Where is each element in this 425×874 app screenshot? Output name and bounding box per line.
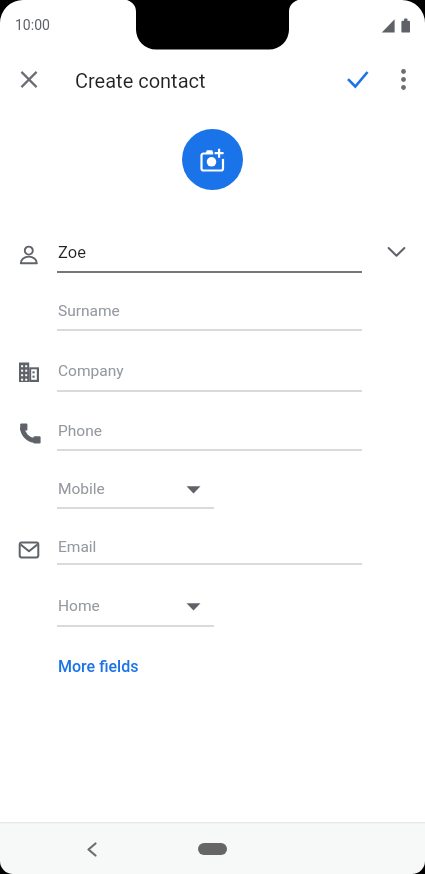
staticText: Zoe [58, 243, 86, 262]
button[interactable] [47, 411, 377, 451]
button[interactable] [50, 650, 160, 684]
button[interactable] [47, 527, 377, 567]
staticText: More fields [58, 657, 139, 676]
staticText: Phone [58, 422, 102, 440]
button[interactable] [71, 829, 111, 869]
button[interactable] [47, 587, 217, 627]
staticText: Email [58, 538, 97, 556]
staticText: Mobile [58, 480, 105, 498]
button[interactable] [376, 232, 418, 273]
button[interactable] [337, 59, 377, 99]
button[interactable] [182, 129, 243, 190]
button[interactable] [9, 59, 49, 99]
staticText: Home [58, 597, 100, 615]
button[interactable] [190, 836, 235, 862]
button[interactable] [47, 351, 377, 392]
button[interactable] [47, 291, 377, 331]
button[interactable] [383, 59, 423, 99]
staticText: Surname [58, 302, 120, 320]
staticText: Company [58, 362, 124, 380]
staticText: 10:00 [15, 17, 50, 33]
staticText: Create contact [75, 69, 206, 92]
button[interactable] [47, 232, 377, 273]
button[interactable] [47, 469, 217, 509]
